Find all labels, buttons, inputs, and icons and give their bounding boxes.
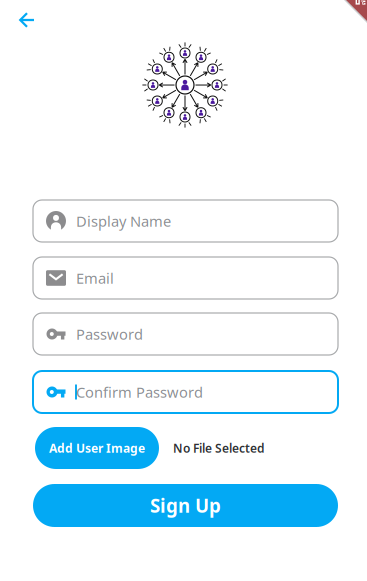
staticText: Password [76,324,143,344]
button[interactable]: Email [33,257,338,299]
button[interactable]: Display Name [33,200,338,242]
staticText: Add User Image [49,440,145,456]
button[interactable]: Sign Up [33,484,338,527]
button[interactable]: Confirm Password [33,371,338,413]
staticText: Sign Up [150,493,221,518]
staticText: Confirm Password [76,382,203,402]
button[interactable]: Password [33,313,338,355]
staticText: Email [76,268,114,288]
button[interactable]: Back [8,2,46,38]
staticText: No File Selected [173,440,265,456]
staticText: Display Name [76,211,171,231]
button[interactable]: Add User Image [35,427,159,469]
